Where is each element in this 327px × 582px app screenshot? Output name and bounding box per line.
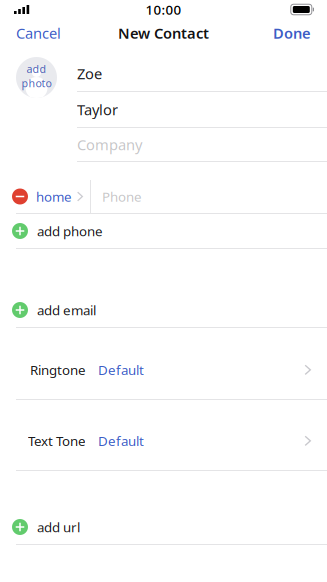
- staticText: Phone: [102, 188, 142, 205]
- staticText: Text Tone: [28, 432, 86, 450]
- staticText: Taylor: [77, 100, 118, 119]
- button[interactable]: add email: [0, 293, 327, 327]
- staticText: home: [36, 188, 72, 205]
- staticText: add phone: [37, 222, 103, 240]
- button[interactable]: Cancel: [16, 17, 69, 49]
- staticText: Ringtone: [30, 361, 86, 379]
- staticText: 10:00: [145, 1, 181, 18]
- button[interactable]: add: [16, 57, 57, 98]
- staticText: add: [26, 62, 46, 76]
- button[interactable]: add url: [0, 510, 327, 544]
- button[interactable]: Ringtone: [0, 361, 327, 399]
- staticText: New Contact: [118, 23, 209, 43]
- staticText: add email: [37, 301, 96, 319]
- staticText: Default: [98, 361, 144, 379]
- staticText: Default: [98, 432, 144, 450]
- staticText: Zoe: [77, 64, 102, 83]
- button[interactable]: home: [0, 180, 90, 213]
- button[interactable]: Phone: [91, 180, 327, 213]
- staticText: Done: [273, 23, 311, 43]
- button[interactable]: Text Tone: [0, 432, 327, 470]
- staticText: add url: [37, 518, 80, 536]
- staticText: photo: [21, 76, 51, 90]
- button[interactable]: Done: [265, 17, 311, 49]
- button[interactable]: add phone: [0, 214, 327, 248]
- staticText: Cancel: [16, 23, 61, 43]
- staticText: Company: [77, 135, 142, 154]
